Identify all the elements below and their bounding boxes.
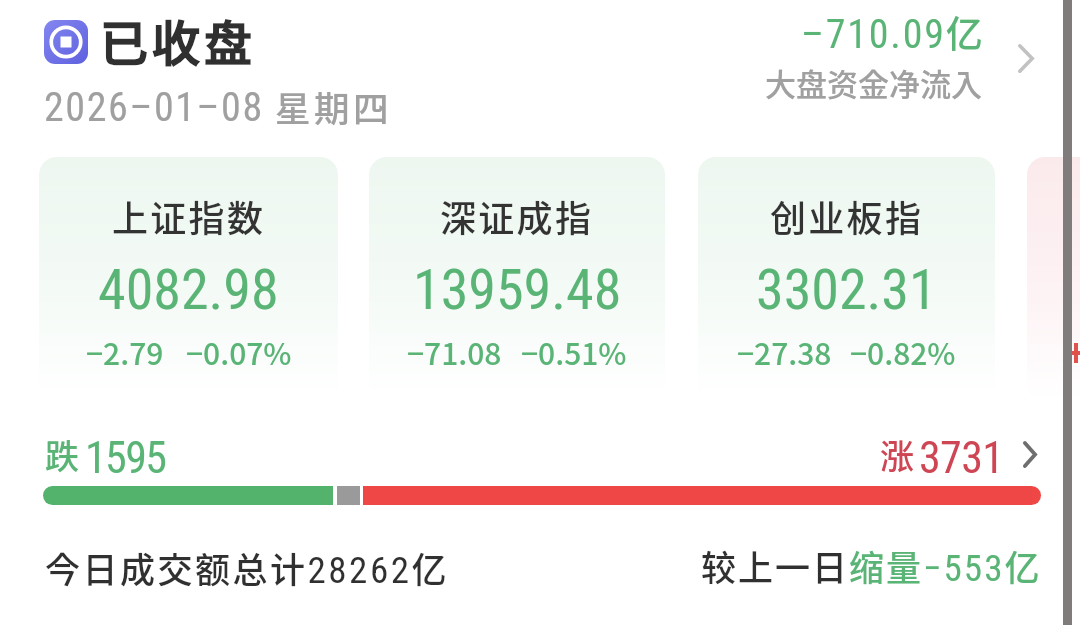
button[interactable]: –710.09亿 xyxy=(760,6,1050,60)
button[interactable] xyxy=(20,530,1080,600)
staticText: 2026–01–08 xyxy=(44,84,264,131)
staticText: 创业板指 xyxy=(770,190,924,242)
staticText: −0.07% xyxy=(186,330,292,373)
other: 涨跌家数详情 xyxy=(1023,441,1037,468)
staticText: –710.09亿 xyxy=(801,5,983,59)
button[interactable]: 跌 xyxy=(0,420,1080,515)
staticText: 上证指数 xyxy=(112,190,266,242)
staticText: 1595 xyxy=(85,432,166,484)
staticText: 深证成指 xyxy=(440,190,594,242)
button[interactable]: 深证成指 xyxy=(369,157,665,400)
staticText: −27.38 xyxy=(737,330,832,373)
staticText: 较上一日缩量−553亿 xyxy=(701,540,1042,591)
button[interactable]: 创业板指 xyxy=(698,157,995,400)
button[interactable] xyxy=(1027,157,1080,400)
staticText: 涨 xyxy=(880,430,914,479)
button[interactable]: 上证指数 xyxy=(39,157,338,400)
staticText: −0.51% xyxy=(521,330,627,373)
staticText: −2.79 xyxy=(86,330,164,373)
staticText: 跌 xyxy=(45,430,79,479)
staticText: 4082.98 xyxy=(98,257,279,323)
staticText: 已收盘 xyxy=(100,5,257,75)
staticText: 大盘资金净流入 xyxy=(765,60,982,105)
button[interactable] xyxy=(20,6,420,130)
staticText: 3302.31 xyxy=(756,257,937,323)
staticText: 3731 xyxy=(919,432,1004,484)
staticText: 星期四 xyxy=(275,81,393,132)
staticText: 13959.48 xyxy=(413,257,622,323)
staticText: −0.82% xyxy=(850,330,956,373)
staticText: −71.08 xyxy=(407,330,502,373)
staticText: 今日成交额总计28262亿 xyxy=(45,542,450,593)
other: 大盘资金净流入详情 xyxy=(1018,44,1034,73)
